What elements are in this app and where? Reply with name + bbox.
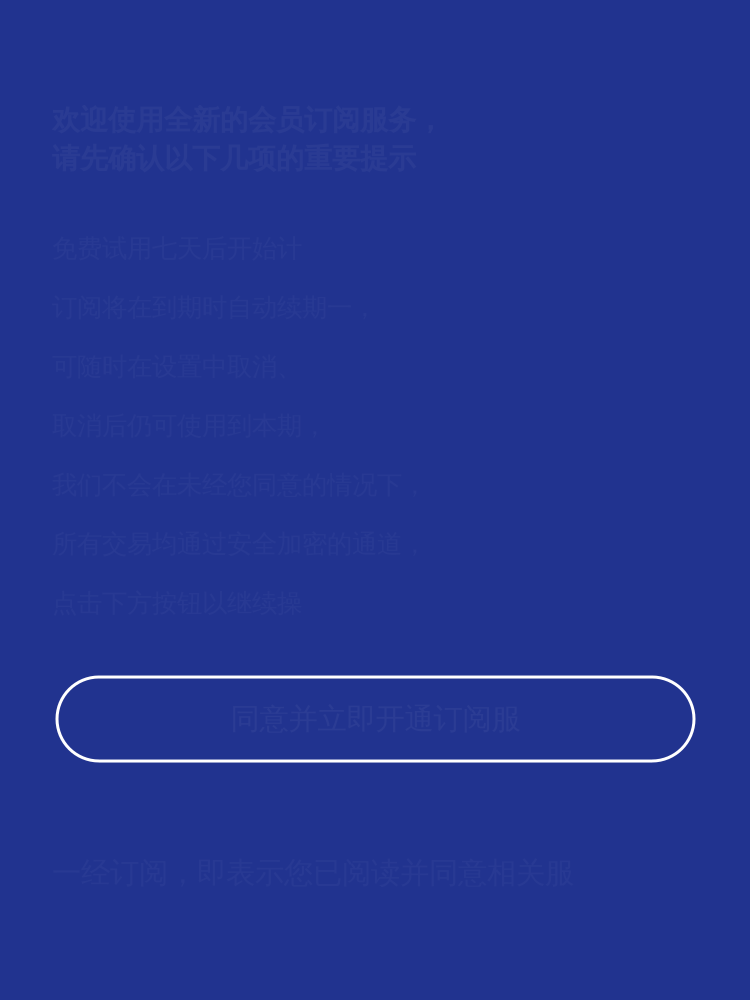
button[interactable]: 同意并立即开通订阅服 — [57, 677, 694, 761]
staticText: 欢迎使用全新的会员订阅服务， — [52, 103, 444, 137]
staticText: 请先确认以下几项的重要提示 — [52, 141, 416, 176]
staticText: 同意并立即开通订阅服 — [230, 701, 520, 737]
